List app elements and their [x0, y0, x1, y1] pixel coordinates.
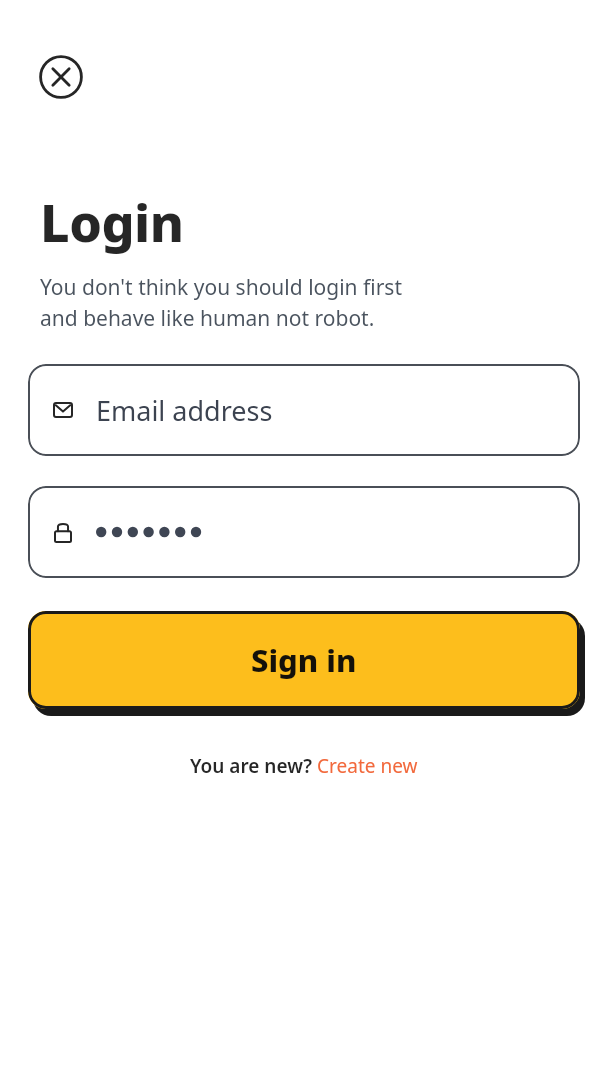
staticText: You are new? Create new — [190, 753, 418, 779]
staticText: You don't think you should login first a… — [40, 273, 402, 332]
button[interactable] — [28, 486, 580, 578]
button[interactable]: Sign in — [28, 611, 580, 709]
staticText: Email address — [96, 392, 273, 429]
staticText: Sign in — [251, 639, 357, 681]
button[interactable]: You are new? Create new — [184, 747, 424, 785]
button[interactable]: Close — [38, 54, 84, 100]
button[interactable]: Email address — [28, 364, 580, 456]
staticText: Login — [40, 186, 184, 257]
